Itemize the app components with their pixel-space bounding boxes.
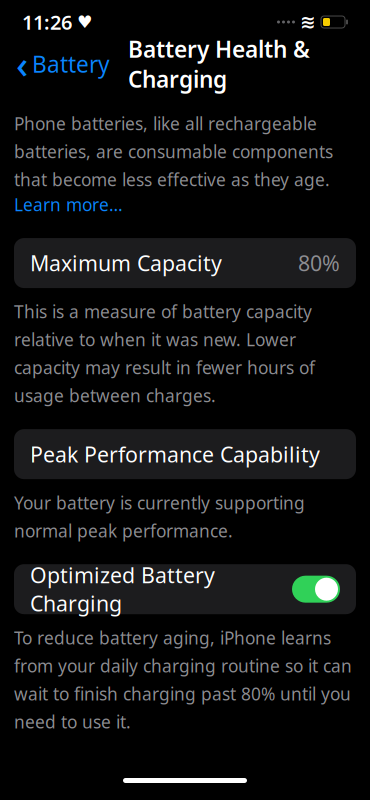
button[interactable]: Learn more… xyxy=(0,191,137,216)
staticText: ≋ xyxy=(300,11,316,33)
staticText: 80% xyxy=(298,249,340,277)
button[interactable]: ‹ xyxy=(8,35,118,93)
staticText: Your battery is currently supporting nor… xyxy=(14,491,305,542)
button[interactable]: Optimized Battery Charging xyxy=(14,564,356,614)
staticText: ♥ xyxy=(77,12,93,32)
staticText: Phone batteries, like all rechargeable b… xyxy=(14,112,335,191)
staticText: This is a measure of battery capacity re… xyxy=(14,300,315,407)
staticText: Battery xyxy=(32,49,110,79)
staticText: ‹ xyxy=(16,39,28,89)
button[interactable]: Peak Performance Capability xyxy=(14,429,356,479)
staticText: Maximum Capacity xyxy=(30,249,222,277)
staticText: Peak Performance Capability xyxy=(30,440,320,468)
staticText: Optimized Battery Charging xyxy=(30,561,215,617)
staticText: 11:26 xyxy=(22,9,72,35)
staticText: Battery Health & Charging xyxy=(128,34,310,94)
button[interactable]: Maximum Capacity xyxy=(14,238,356,288)
staticText: Learn more… xyxy=(14,193,123,216)
staticText: To reduce battery aging, iPhone learns f… xyxy=(14,626,352,733)
